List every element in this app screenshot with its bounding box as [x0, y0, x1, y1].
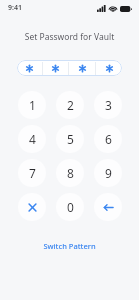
staticText: 0	[67, 199, 74, 215]
button[interactable]: 0	[56, 193, 84, 221]
button[interactable]: 4	[18, 125, 46, 153]
button[interactable]: 1	[18, 91, 46, 119]
button[interactable]: Clear	[18, 193, 46, 221]
staticText: 5	[67, 131, 74, 147]
button[interactable]: 5	[56, 125, 84, 153]
staticText: Switch Pattern	[43, 241, 96, 251]
staticText: 6	[105, 131, 112, 147]
staticText: 4	[29, 131, 36, 147]
staticText: 8	[67, 165, 74, 181]
staticText: Set Password for Vault	[0, 31, 139, 43]
staticText: 3	[105, 97, 112, 113]
button[interactable]: 6	[94, 125, 122, 153]
button[interactable]: 2	[56, 91, 84, 119]
button[interactable]: 7	[18, 159, 46, 187]
staticText: 9:41	[8, 3, 22, 13]
staticText: 1	[29, 97, 36, 113]
staticText: 2	[67, 97, 74, 113]
staticText: 9	[105, 165, 112, 181]
button[interactable]: Switch Pattern	[37, 238, 102, 254]
button[interactable]: 8	[56, 159, 84, 187]
staticText: 7	[29, 165, 36, 181]
button[interactable]	[17, 60, 122, 76]
button[interactable]: Backspace	[94, 193, 122, 221]
button[interactable]: 3	[94, 91, 122, 119]
button[interactable]: 9	[94, 159, 122, 187]
